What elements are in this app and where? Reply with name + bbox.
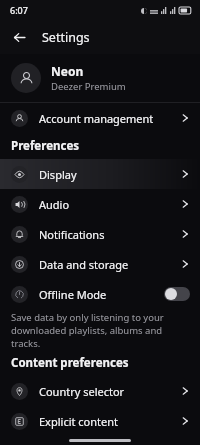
button[interactable]: Country selector <box>0 376 200 406</box>
staticText: Content preferences <box>11 355 129 371</box>
staticText: Account management <box>39 111 154 126</box>
other: Open <box>180 199 190 209</box>
button[interactable]: Data and storage <box>0 249 200 279</box>
staticText: Save data by only listening to your down… <box>11 311 190 350</box>
staticText: Explicit content <box>39 414 119 429</box>
button[interactable]: Display <box>0 159 200 189</box>
other: Open <box>180 416 190 426</box>
button[interactable]: Offline Mode <box>0 279 200 309</box>
staticText: Audio <box>39 197 70 212</box>
other: Open <box>180 169 190 179</box>
staticText: Neon <box>51 63 84 79</box>
staticText: Offline Mode <box>39 287 107 302</box>
staticText: Notifications <box>39 227 105 242</box>
staticText: Country selector <box>39 384 125 399</box>
staticText: Settings <box>42 29 90 46</box>
other: Open <box>180 113 190 123</box>
button[interactable]: Notifications <box>0 219 200 249</box>
staticText: Deezer Premium <box>51 80 126 93</box>
staticText: Display <box>39 167 77 182</box>
button[interactable]: Back <box>8 26 30 48</box>
staticText: 6:07 <box>10 4 28 16</box>
button[interactable]: Explicit content <box>0 406 200 436</box>
other: Open <box>180 386 190 396</box>
button[interactable]: Neon <box>0 54 200 102</box>
button[interactable]: Audio <box>0 189 200 219</box>
staticText: Preferences <box>11 138 80 154</box>
other: Open <box>180 259 190 269</box>
staticText: Data and storage <box>39 257 129 272</box>
button[interactable]: Account management <box>0 103 200 133</box>
other: Open <box>180 229 190 239</box>
